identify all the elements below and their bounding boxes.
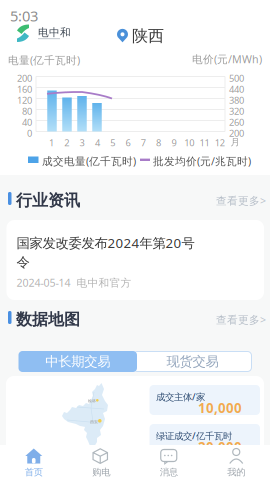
staticText: 购电 [92,466,110,478]
staticText: 320 [229,105,244,117]
staticText: 电量(亿千瓦时) [8,53,80,67]
staticText: 我的 [227,466,245,478]
staticText: 10 [184,136,194,149]
staticText: 中长期交易 [45,353,110,370]
staticText: 440 [229,83,244,95]
staticText: 5:03 [10,6,38,25]
button[interactable]: 首页 [0,445,67,480]
staticText: 查看更多> [216,193,266,208]
staticText: 首页 [25,466,43,478]
staticText: 8 [156,136,161,149]
button[interactable]: 查看更多> [216,312,266,327]
staticText: 绿证成交/亿千瓦时 [156,429,232,442]
button[interactable]: 陕西 [117,26,164,46]
staticText: 令 [16,254,29,270]
staticText: 电中和 [38,26,71,39]
staticText: 电价(元/MWh) [192,52,262,66]
staticText: 榆林 [88,398,96,403]
staticText: 11 [199,136,209,149]
staticText: 6 [125,136,130,149]
staticText: 0 [27,127,32,139]
button[interactable]: 购电 [67,445,135,480]
staticText: 9 [171,136,176,149]
staticText: 月 [230,136,239,148]
staticText: 1 [49,136,54,149]
staticText: 现货交易 [166,353,218,370]
staticText: 陕西 [132,26,164,46]
staticText: 批发均价(元/兆瓦时) [153,154,251,168]
staticText: 20,000 [198,438,242,456]
staticText: 成交主体/家 [156,390,205,403]
staticText: 3 [80,136,85,149]
staticText: 160 [17,83,32,95]
staticText: 120 [17,94,32,106]
staticText: 200 [229,127,244,139]
button[interactable]: 国家发改委发布2024年第20号 [6,220,264,300]
staticText: 国家发改委发布2024年第20号 [16,234,194,252]
staticText: 5 [110,136,115,149]
staticText: 4 [95,136,100,149]
staticText: 查看更多> [216,312,266,327]
button[interactable]: 查看更多> [216,193,266,208]
staticText: 260 [229,116,244,128]
staticText: 成交电量(亿千瓦时) [42,154,136,168]
staticText: 行业资讯 [16,190,80,210]
staticText: 7 [141,136,146,149]
staticText: 200 [17,72,32,84]
staticText: 12 [215,136,225,149]
staticText: 西安 [90,419,98,424]
staticText: 消息 [160,466,178,478]
staticText: 40 [22,116,32,128]
staticText: 80 [22,105,32,117]
button[interactable]: 现货交易 [133,351,251,371]
button[interactable]: 中长期交易 [18,351,137,372]
staticText: 500 [229,72,244,84]
staticText: 380 [229,94,244,106]
button[interactable]: 我的 [202,445,270,480]
staticText: 10,000 [198,399,242,417]
staticText: 2024-05-14 电中和官方 [16,275,131,290]
staticText: 2 [64,136,69,149]
button[interactable]: 消息 [135,445,202,480]
staticText: 数据地图 [16,309,80,329]
